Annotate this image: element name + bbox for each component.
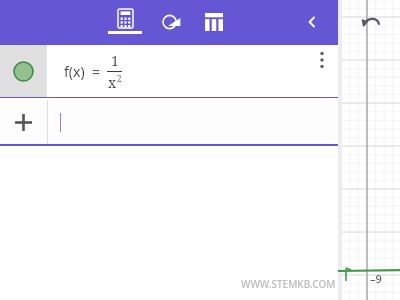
staticText: f(x) = (64, 62, 100, 81)
staticText: WWW.STEMKB.COM (241, 277, 336, 291)
button[interactable]: More options (310, 48, 334, 72)
button[interactable]: Add input (0, 98, 47, 146)
staticText: x (108, 73, 117, 92)
staticText: –9 (370, 271, 382, 286)
button[interactable]: Collapse panel (298, 8, 326, 36)
button[interactable]: Toggle visibility (0, 44, 47, 98)
staticText: 2 (117, 73, 122, 84)
button[interactable]: Undo (360, 12, 382, 34)
button[interactable] (48, 98, 338, 146)
button[interactable]: Algebra calculator (107, 0, 143, 44)
staticText: 1 (111, 51, 119, 70)
button[interactable]: Table (197, 0, 231, 44)
button[interactable]: Geometry (155, 0, 189, 44)
